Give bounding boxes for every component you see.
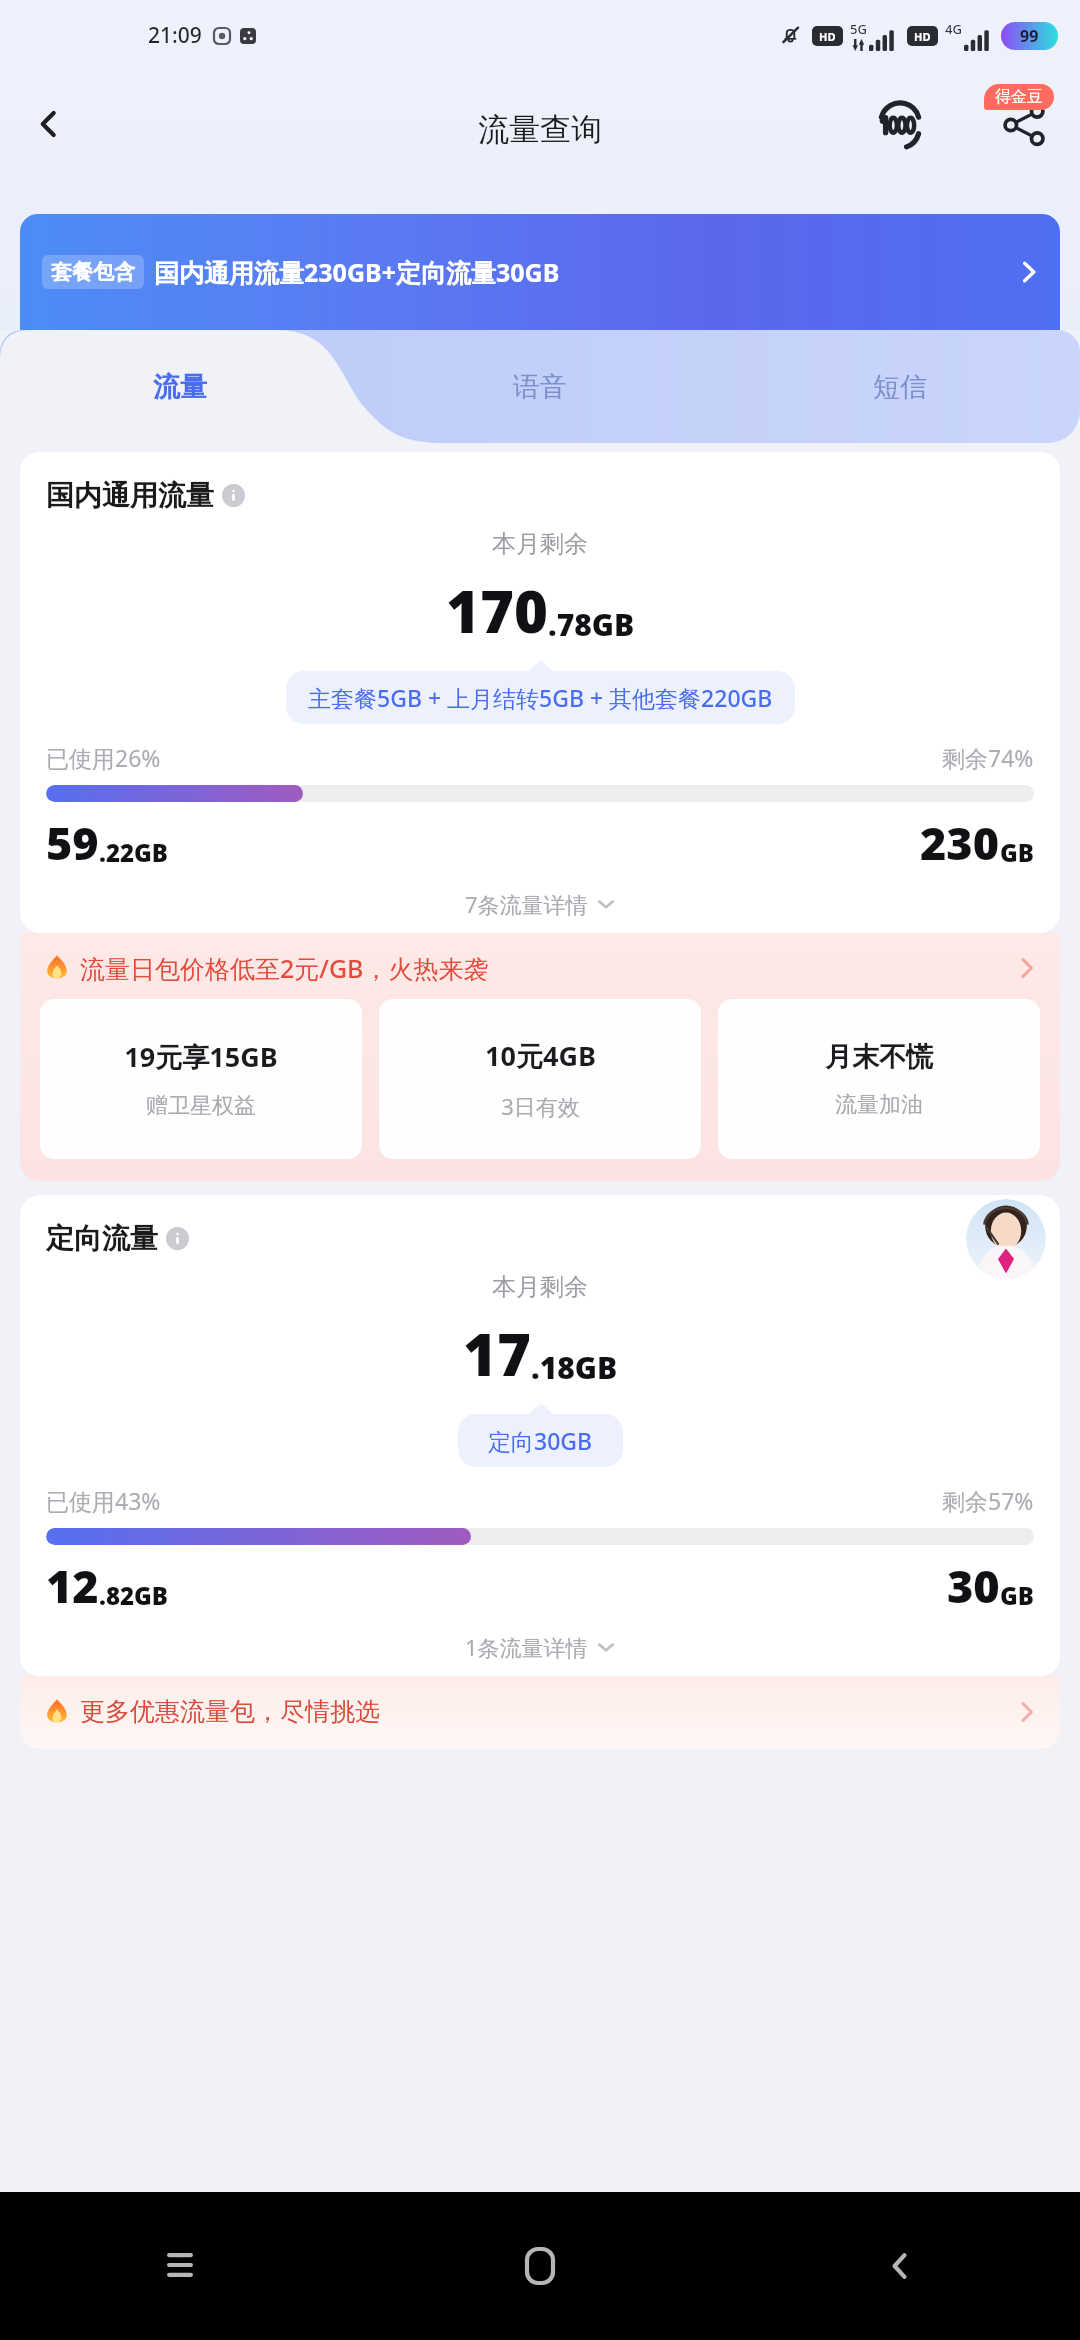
staticText: 更多优惠流量包，尽情挑选 [80,1696,380,1727]
staticText: GB [1000,836,1034,869]
staticText: 已使用43% [46,1485,161,1516]
staticText: 剩余57% [942,1485,1034,1516]
staticText: 流量日包价格低至2元/GB，火热来袭 [80,951,489,985]
staticText: 本月剩余 [492,529,588,559]
button[interactable]: 套餐包含 [20,214,1060,330]
staticText: 短信 [873,370,927,404]
staticText: .78GB [548,604,635,645]
staticText: 流量查询 [478,110,602,149]
button[interactable]: 返回 [720,2192,1080,2340]
staticText: 套餐包含 [51,259,135,285]
staticText: 语音 [513,370,567,404]
staticText: 59 [46,812,99,873]
button[interactable]: 流量日包价格低至2元/GB，火热来袭 [20,933,1060,995]
staticText: 10元4GB [485,1037,596,1074]
button[interactable]: 返回 [18,93,80,155]
staticText: 定向30GB [488,1425,593,1456]
staticText: 定向流量 [46,1221,158,1256]
staticText: 流量加油 [835,1091,923,1119]
staticText: 5G [850,20,867,38]
staticText: 30 [947,1555,1000,1616]
staticText: 3日有效 [501,1091,580,1121]
button[interactable]: 主页 [360,2192,720,2340]
button[interactable]: 更多优惠流量包，尽情挑选 [20,1676,1060,1749]
button[interactable]: 在线客服 [966,1199,1046,1279]
staticText: 已使用26% [46,742,161,773]
staticText: 主套餐5GB + 上月结转5GB + 其他套餐220GB [308,682,773,713]
button[interactable]: 流量 [0,330,360,443]
staticText: 剩余74% [942,742,1034,773]
button[interactable]: 分享 [990,91,1058,159]
staticText: .18GB [531,1347,618,1388]
staticText: 19元享15GB [124,1038,278,1075]
button[interactable]: 19元享15GB [40,999,362,1159]
staticText: 4G [945,20,962,38]
button[interactable]: 最近任务 [0,2192,360,2340]
staticText: 7条流量详情 [465,889,588,919]
staticText: 17 [463,1314,531,1393]
staticText: 230 [920,812,1000,873]
staticText: 赠卫星权益 [146,1092,256,1120]
button[interactable]: 语音 [360,330,720,443]
staticText: 170 [446,571,548,650]
staticText: 本月剩余 [492,1272,588,1302]
button[interactable]: 1条流量详情 [20,1618,1060,1676]
staticText: GB [1000,1579,1034,1612]
button[interactable]: 1000号客服 [866,91,934,159]
staticText: .22GB [99,836,168,869]
button[interactable]: 10元4GB [379,999,701,1159]
staticText: 99 [1020,25,1039,47]
staticText: HD [819,29,836,44]
staticText: 21:09 [148,21,202,50]
staticText: .82GB [99,1579,168,1612]
staticText: 得金豆 [995,87,1043,107]
staticText: HD [914,29,931,44]
staticText: 月末不慌 [825,1040,933,1074]
staticText: 1条流量详情 [465,1632,588,1662]
staticText: 12 [46,1555,99,1616]
staticText: 国内通用流量230GB+定向流量30GB [154,255,560,289]
button[interactable]: 7条流量详情 [20,875,1060,933]
staticText: 流量 [153,370,207,404]
staticText: 国内通用流量 [46,478,214,513]
button[interactable]: 月末不慌 [718,999,1040,1159]
button[interactable]: 短信 [720,330,1080,443]
